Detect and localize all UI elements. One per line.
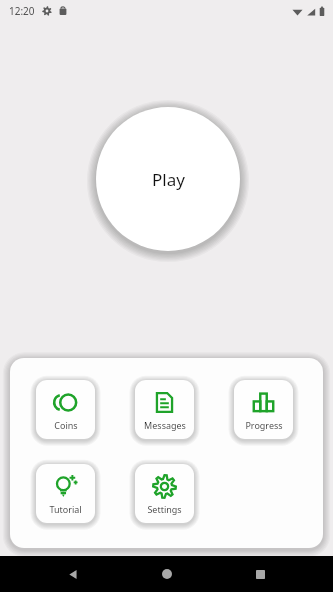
- button[interactable]: Home: [146, 556, 188, 592]
- staticText: Progress: [245, 419, 283, 431]
- staticText: Play: [152, 168, 185, 191]
- button[interactable]: Tutorial: [36, 464, 95, 523]
- staticText: 12:20: [9, 4, 35, 18]
- staticText: Tutorial: [49, 503, 82, 515]
- staticText: Coins: [54, 419, 78, 431]
- button[interactable]: Progress: [234, 380, 293, 439]
- button[interactable]: Back: [52, 556, 94, 592]
- button[interactable]: Coins: [36, 380, 95, 439]
- button[interactable]: Messages: [135, 380, 194, 439]
- button[interactable]: Recents: [239, 556, 281, 592]
- button[interactable]: Play: [96, 107, 240, 251]
- staticText: Messages: [144, 419, 186, 431]
- staticText: Settings: [147, 503, 182, 515]
- button[interactable]: Settings: [135, 464, 194, 523]
